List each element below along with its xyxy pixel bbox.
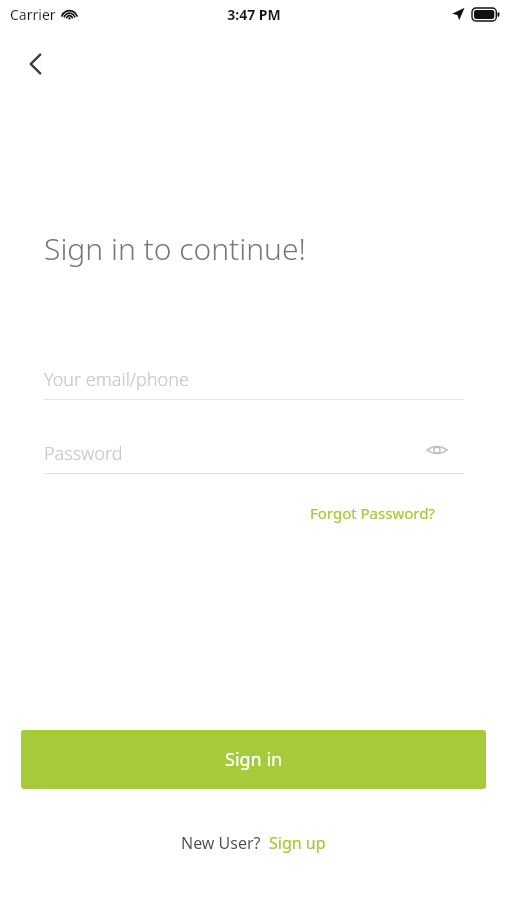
staticText: 3:47 PM: [227, 5, 281, 24]
button[interactable]: Sign up: [269, 832, 326, 854]
staticText: Sign in: [225, 747, 283, 772]
button[interactable]: Back: [14, 42, 58, 86]
staticText: Carrier: [10, 5, 56, 24]
button[interactable]: Password: [44, 432, 464, 474]
button[interactable]: Forgot Password?: [310, 498, 441, 528]
staticText: Your email/phone: [44, 367, 189, 392]
staticText: Forgot Password?: [310, 503, 435, 523]
staticText: Sign in to continue!: [44, 228, 306, 269]
staticText: New User?: [181, 832, 261, 854]
button[interactable]: Your email/phone: [44, 358, 464, 400]
staticText: Password: [44, 441, 123, 466]
button[interactable]: Sign in: [21, 730, 486, 789]
button[interactable]: Show password: [416, 429, 458, 471]
staticText: Sign up: [269, 832, 326, 854]
